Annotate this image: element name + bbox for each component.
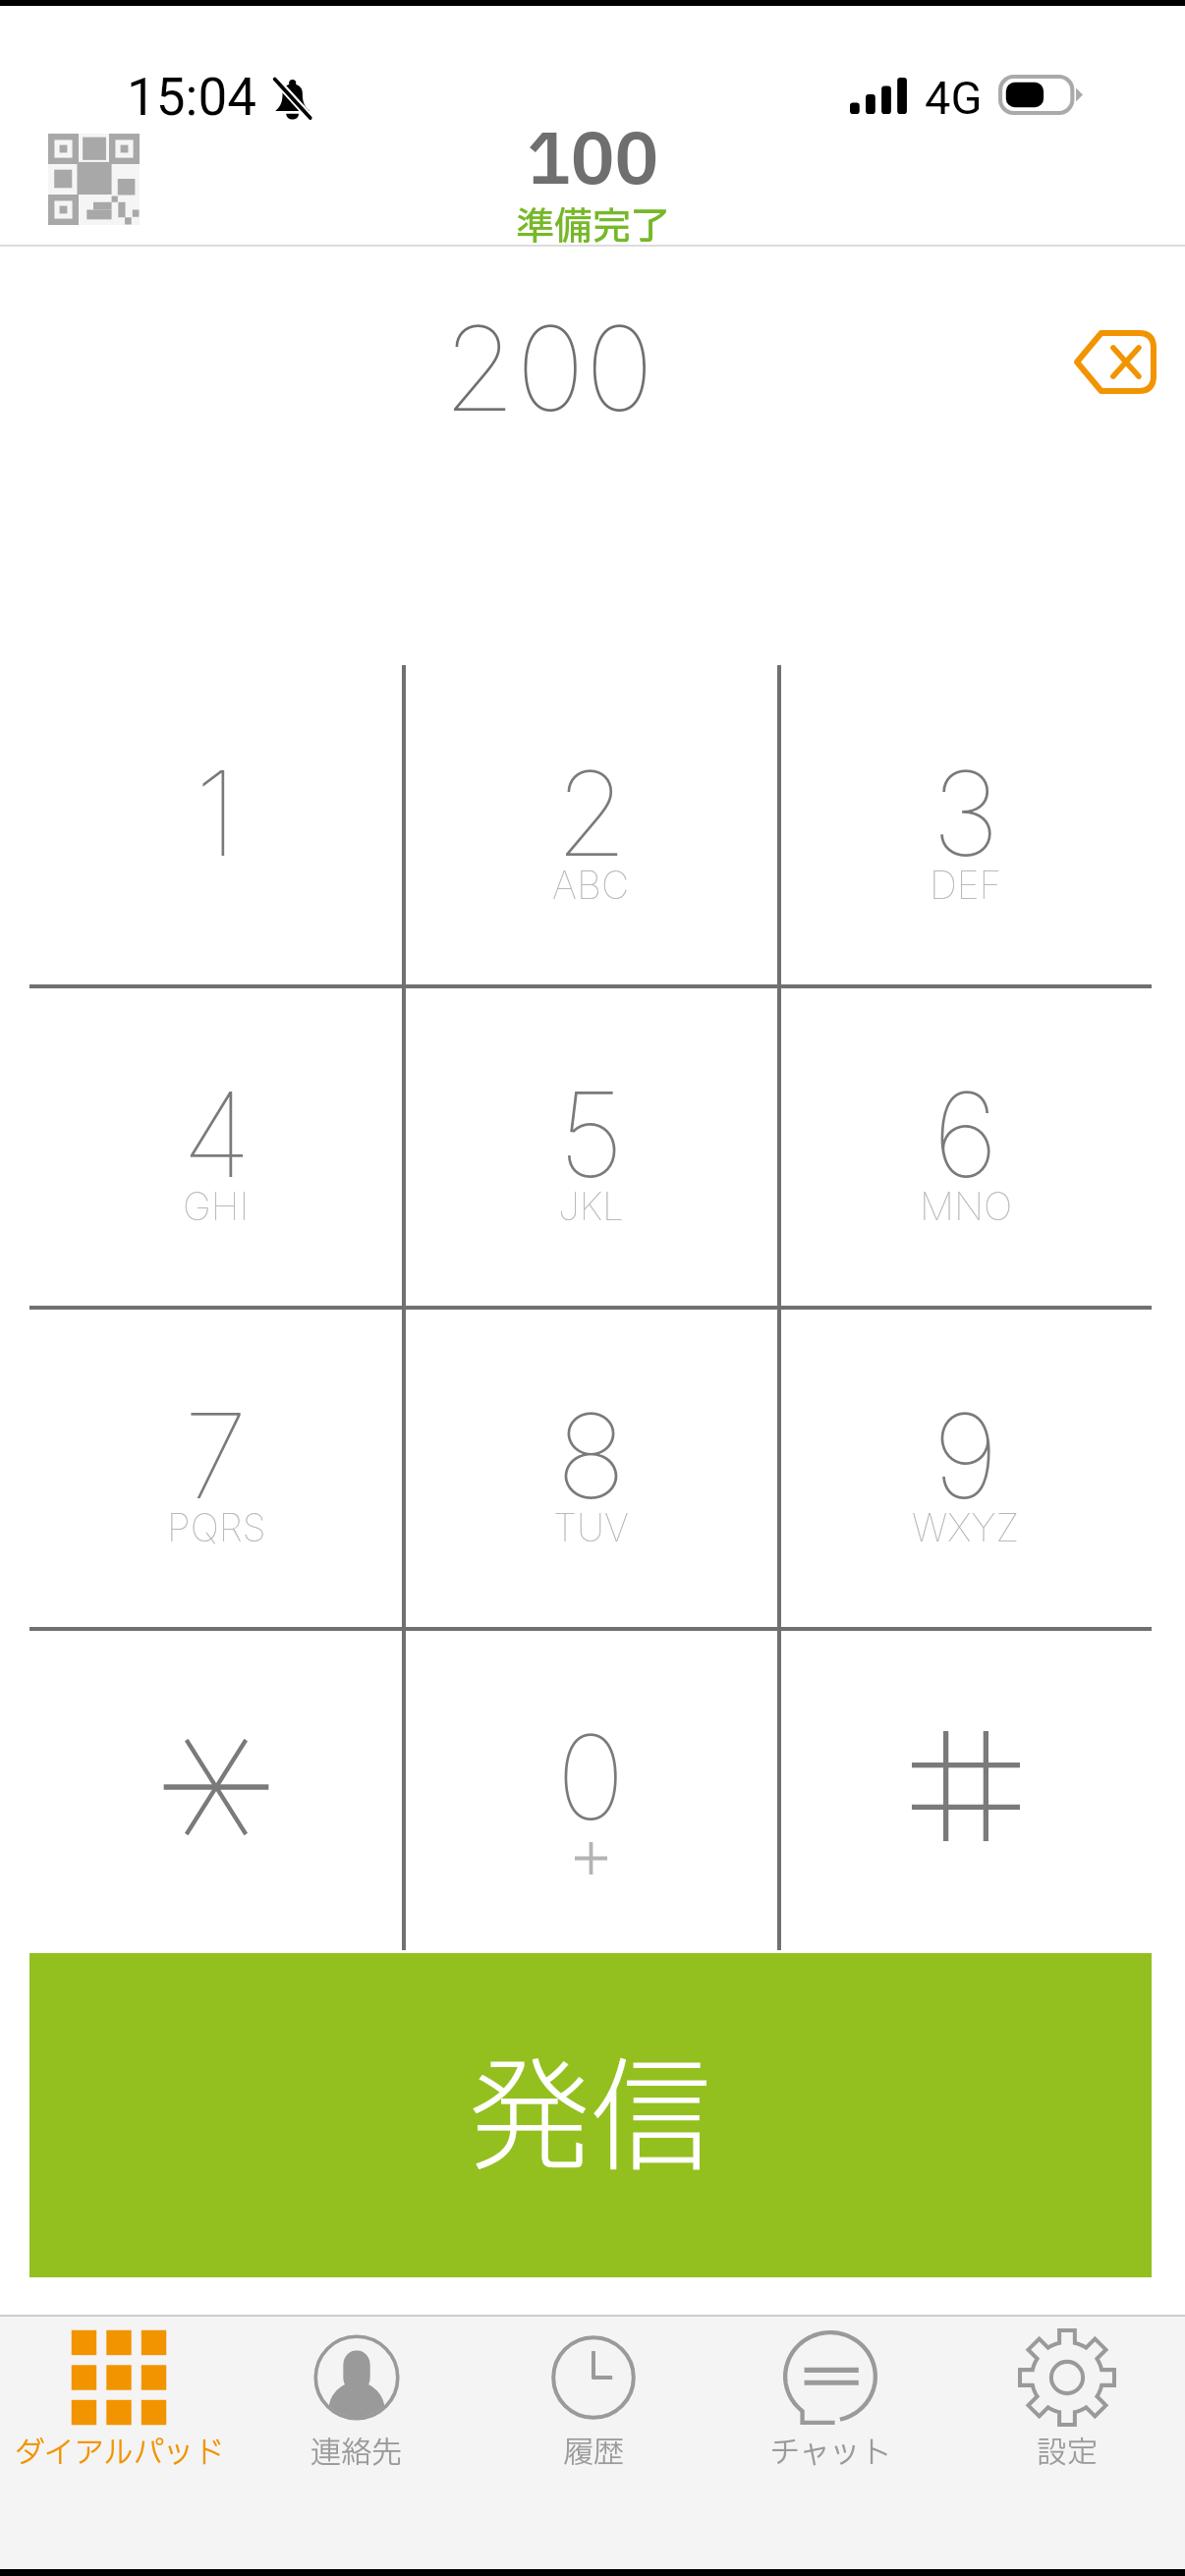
button[interactable]: 4 [29,986,403,1308]
staticText: 履歴 [563,2431,624,2476]
staticText: 7 [184,1385,249,1509]
button[interactable]: 設定 [948,2317,1185,2569]
button[interactable]: 9 [780,1308,1152,1629]
button[interactable]: Star [29,1629,403,1950]
staticText: 連絡先 [310,2431,402,2476]
button[interactable]: 1 [29,665,403,986]
button[interactable]: 0 [405,1629,777,1950]
staticText: 2 [555,743,628,867]
staticText: TUV [553,1504,630,1550]
staticText: ABC [552,862,630,908]
staticText: MNO [920,1183,1013,1229]
staticText: 3 [931,743,1000,867]
button[interactable]: Delete [1074,330,1157,394]
staticText: 準備完了 [516,199,670,249]
other: Hash [780,1629,1152,1950]
staticText: 設定 [1037,2431,1098,2476]
button[interactable]: ダイアルパッド [0,2317,238,2569]
staticText: 4 [182,1064,252,1188]
button[interactable]: QR code [48,134,140,225]
staticText: PQRS [167,1504,266,1550]
button[interactable]: 履歴 [475,2317,711,2569]
staticText: 1 [195,743,238,867]
button[interactable]: 6 [780,986,1152,1308]
staticText: ダイアルパッド [14,2431,225,2476]
staticText: チャット [769,2431,891,2476]
staticText: 0 [556,1707,626,1830]
button[interactable]: 連絡先 [238,2317,475,2569]
button[interactable]: 7 [29,1308,403,1629]
staticText: 6 [932,1064,999,1188]
staticText: 発信 [469,2032,713,2214]
staticText: 4G [925,71,983,125]
staticText: 100 [527,110,659,189]
staticText: 9 [932,1385,999,1509]
staticText: 200 [443,298,654,439]
other: Star [29,1629,403,1950]
button[interactable]: 発信 [29,1953,1152,2277]
staticText: 15:04 [127,67,256,128]
staticText: JKL [558,1183,625,1229]
staticText: WXYZ [912,1504,1020,1550]
staticText: 8 [556,1385,627,1509]
staticText: DEF [930,862,1002,908]
staticText: 5 [558,1064,625,1188]
button[interactable]: チャット [711,2317,948,2569]
button[interactable]: 2 [405,665,777,986]
button[interactable]: Hash [780,1629,1152,1950]
staticText: GHI [183,1183,250,1229]
button[interactable]: 8 [405,1308,777,1629]
button[interactable]: 5 [405,986,777,1308]
button[interactable]: 3 [780,665,1152,986]
